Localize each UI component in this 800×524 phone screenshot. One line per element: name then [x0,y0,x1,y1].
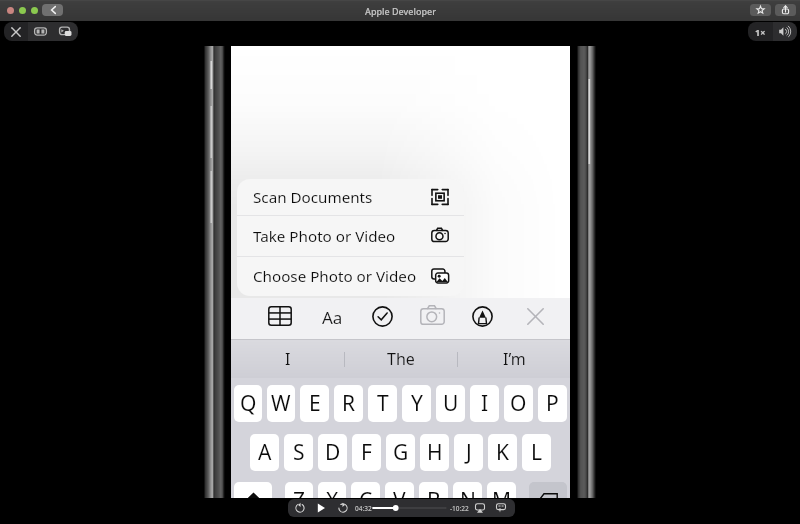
staticText: W [271,389,291,418]
button[interactable]: R [334,385,363,422]
staticText: T [377,389,389,418]
button[interactable]: L [522,434,551,471]
staticText: I [285,348,291,370]
button[interactable]: Split view [28,22,52,41]
button[interactable]: Markup [468,298,496,340]
button[interactable]: Back [42,4,63,16]
button[interactable]: T [368,385,397,422]
staticText: Z [293,486,306,498]
button[interactable]: Checklist [368,298,396,340]
button[interactable]: Picture in picture [52,22,78,41]
staticText: N [460,486,476,498]
button[interactable]: H [420,434,449,471]
button[interactable]: S [284,434,313,471]
staticText: I’m [503,348,526,370]
button[interactable]: F [352,434,381,471]
button[interactable]: I [470,385,499,422]
button[interactable]: Take photo [418,298,446,340]
button[interactable]: D [318,434,347,471]
staticText: 1× [755,26,766,38]
button[interactable]: Skip back 15 seconds [293,501,307,515]
staticText: P [546,389,559,418]
button[interactable]: G [386,434,415,471]
button[interactable]: U [436,385,465,422]
button[interactable]: O [504,385,533,422]
staticText: L [531,438,543,467]
staticText: Take Photo or Video [253,226,396,247]
button[interactable]: Playback speed [748,22,773,41]
staticText: C [359,486,373,498]
staticText: S [293,438,305,467]
button[interactable]: J [454,434,483,471]
staticText: I [481,389,489,418]
button[interactable]: Close keyboard [521,298,549,340]
staticText: The [387,348,415,370]
staticText: Aa [322,306,343,326]
staticText: U [443,389,459,418]
staticText: B [427,486,441,498]
button[interactable]: B [419,482,448,498]
staticText: J [466,438,472,467]
button[interactable]: Y [402,385,431,422]
staticText: H [427,438,443,467]
button[interactable]: I’m [458,340,570,378]
button[interactable]: K [488,434,517,471]
staticText: D [325,438,341,467]
staticText: M [492,486,512,498]
button[interactable]: X [318,482,346,498]
button[interactable]: AirPlay [473,501,487,515]
button[interactable]: Close [4,22,28,41]
button[interactable]: Backspace [521,482,567,498]
staticText: -10:22 [450,504,469,513]
button[interactable]: Zoom window [31,7,38,14]
staticText: K [496,438,509,467]
button[interactable]: Favorite [750,4,771,16]
staticText: G [393,438,409,467]
button[interactable]: Scan Documents [237,179,464,215]
button[interactable]: Play [314,501,328,515]
button[interactable]: W [267,385,295,422]
staticText: R [342,389,356,418]
staticText: 04:32 [355,504,372,513]
staticText: X [326,486,339,498]
staticText: F [361,438,372,467]
staticText: O [510,389,527,418]
button[interactable]: Z [285,482,313,498]
button[interactable]: M [487,482,516,498]
button[interactable]: Take Photo or Video [237,216,464,256]
button[interactable]: A [250,434,279,471]
staticText: E [309,389,321,418]
button[interactable]: C [351,482,380,498]
button[interactable]: Text format [318,306,346,326]
button[interactable]: Share [775,4,796,16]
button[interactable]: The [345,340,457,378]
staticText: Scan Documents [253,187,373,208]
staticText: Y [411,389,423,418]
button[interactable]: V [385,482,414,498]
button[interactable]: Choose Photo or Video [237,257,464,296]
button[interactable]: I [231,340,344,378]
staticText: A [258,438,272,467]
button[interactable]: E [300,385,329,422]
button[interactable]: N [453,482,482,498]
button[interactable]: Insert table [266,298,294,340]
staticText: Apple Developer [365,5,436,17]
button[interactable]: Close window [7,7,14,14]
button[interactable]: Volume [773,22,797,41]
button[interactable]: Minimize window [19,7,26,14]
button[interactable]: Seek [372,502,447,514]
button[interactable]: Skip forward 15 seconds [336,501,350,515]
button[interactable]: Q [234,385,262,422]
button[interactable]: P [538,385,567,422]
button[interactable]: Subtitles [494,501,508,515]
staticText: V [393,486,406,498]
staticText: Q [240,389,257,418]
button[interactable]: Shift [234,482,280,498]
staticText: Choose Photo or Video [253,266,417,287]
